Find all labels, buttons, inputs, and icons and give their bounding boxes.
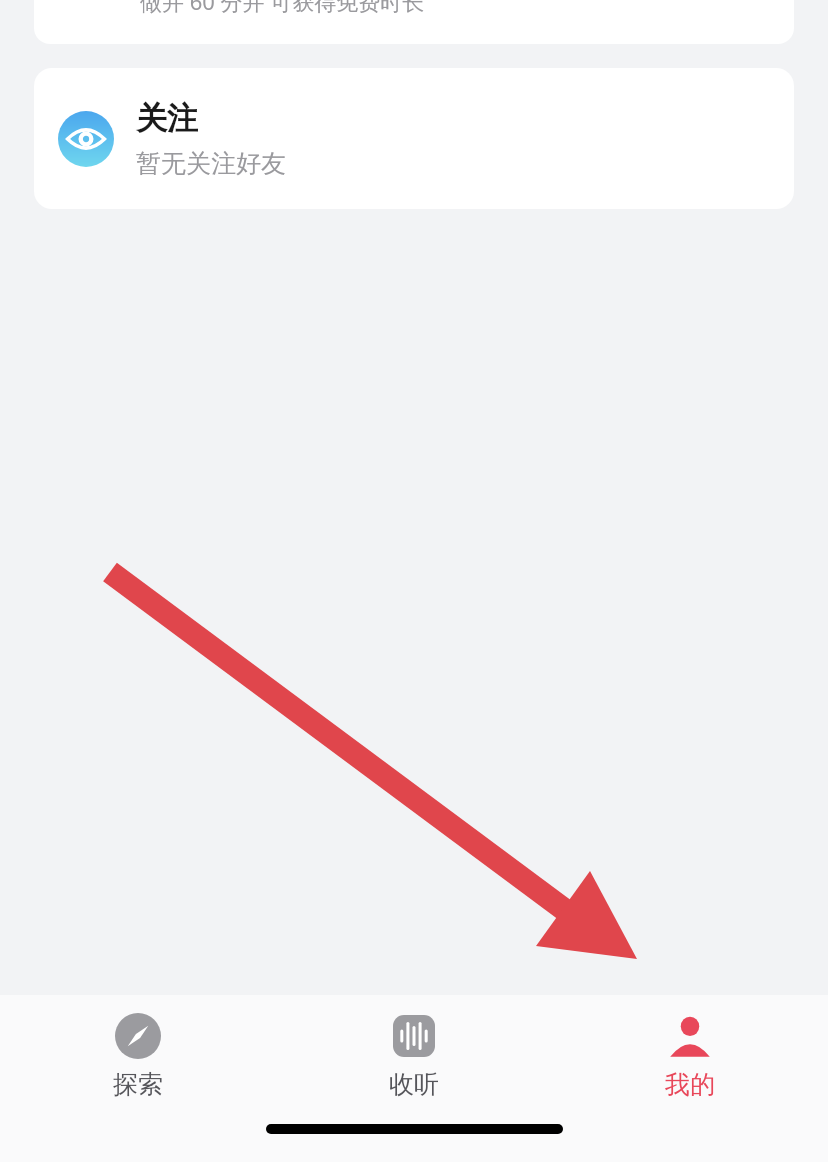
staticText: 收听 bbox=[389, 1069, 439, 1100]
staticText: Baidu 经验 bbox=[636, 1068, 810, 1114]
button[interactable]: 关注 bbox=[34, 68, 794, 209]
staticText: 做并 60 分并 可获得免费时长 bbox=[140, 0, 425, 16]
button[interactable]: 做并 60 分并 可获得免费时长 bbox=[34, 0, 794, 44]
staticText: 暂无关注好友 bbox=[136, 148, 286, 179]
staticText: 探索 bbox=[113, 1069, 163, 1100]
staticText: 我的 bbox=[665, 1069, 715, 1100]
button[interactable]: 收听 bbox=[276, 1013, 552, 1100]
button[interactable]: 我的 bbox=[552, 1013, 828, 1100]
staticText: 关注 bbox=[136, 99, 198, 138]
button[interactable]: 探索 bbox=[0, 1013, 276, 1100]
